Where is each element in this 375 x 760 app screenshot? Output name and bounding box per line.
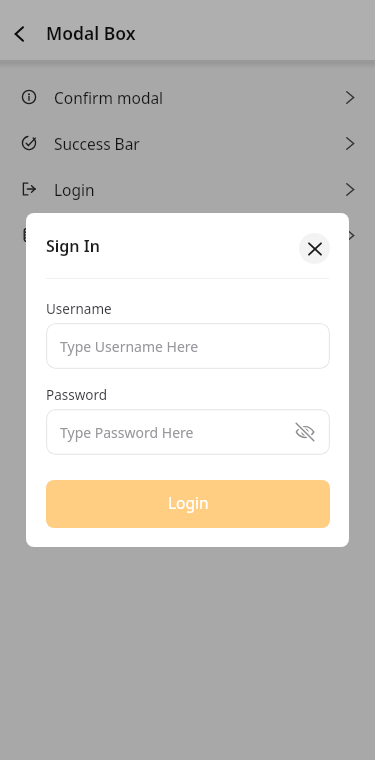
staticText: Username — [46, 300, 112, 318]
button[interactable]: Login — [0, 166, 375, 212]
button[interactable]: Confirm modal — [0, 74, 375, 120]
button[interactable]: Show password — [294, 421, 316, 443]
staticText: Sign In — [46, 235, 100, 257]
button[interactable]: Back — [0, 7, 37, 59]
staticText: Login — [168, 492, 209, 513]
staticText: Modal Box — [46, 21, 136, 45]
button[interactable]: Form — [0, 212, 375, 258]
button[interactable]: Type Password Here — [46, 409, 330, 455]
staticText: Login — [54, 179, 95, 200]
staticText: Confirm modal — [54, 87, 164, 108]
staticText: Password — [46, 386, 108, 404]
button[interactable]: Login — [46, 480, 330, 528]
staticText: Success Bar — [54, 133, 140, 154]
button[interactable]: Type Username Here — [46, 323, 330, 369]
staticText: Type Username Here — [60, 337, 199, 356]
staticText: Form — [54, 225, 93, 246]
button[interactable]: Close — [299, 233, 330, 264]
staticText: Type Password Here — [60, 423, 194, 442]
button[interactable]: Success Bar — [0, 120, 375, 166]
button[interactable] — [0, 0, 375, 760]
